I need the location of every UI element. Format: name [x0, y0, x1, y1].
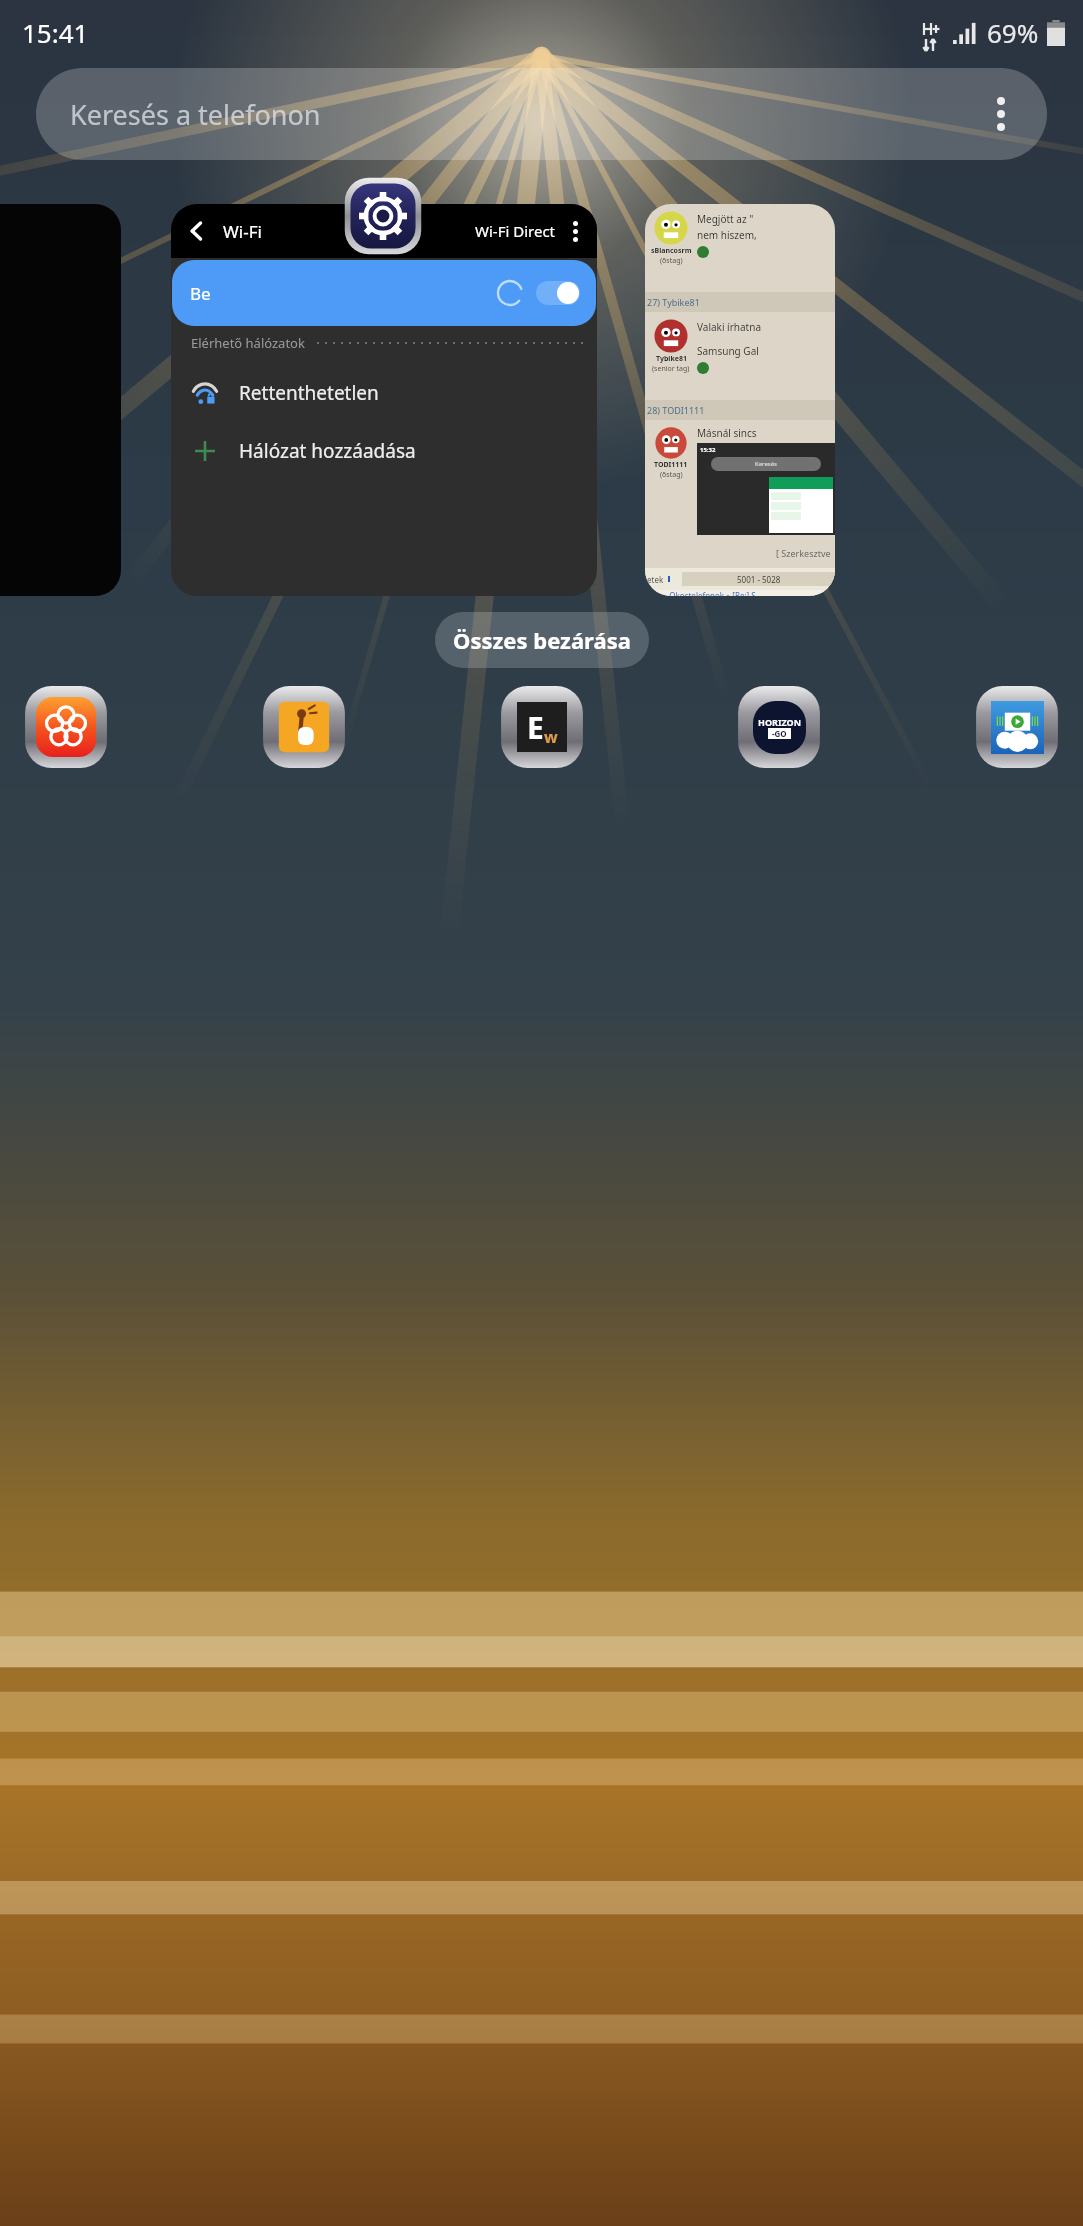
staticText: Másnál sincs — [697, 426, 757, 440]
button[interactable]: sBlancosrm — [645, 204, 835, 596]
staticText: nok » Okostelefonok » [Re:] S — [647, 590, 756, 596]
button[interactable]: Összes bezárása — [435, 612, 649, 668]
staticText: Tybike81 — [656, 354, 687, 364]
button[interactable]: Horizon Go — [735, 683, 823, 771]
staticText: Valaki írhatna — [697, 320, 762, 334]
staticText: (őstag) — [660, 256, 683, 266]
staticText: TODI1111 — [654, 460, 688, 470]
staticText: Samsung Gal — [697, 344, 759, 358]
button[interactable]: Hálózat hozzáadása — [171, 428, 597, 474]
staticText: 28) TODI1111 — [647, 404, 705, 416]
staticText: sBlancosrm — [651, 246, 692, 256]
staticText: Wi-Fi Direct — [475, 221, 555, 241]
button[interactable]: Be — [172, 260, 596, 326]
staticText: -GO — [772, 728, 787, 739]
staticText: Hálózat hozzáadása — [239, 438, 416, 464]
staticText: etek — [647, 574, 664, 585]
button[interactable]: Back — [171, 204, 597, 596]
button[interactable]: Media player — [973, 683, 1061, 771]
staticText: nem hiszem, — [697, 228, 757, 242]
button[interactable] — [536, 281, 580, 305]
staticText: Összes bezárása — [453, 625, 631, 655]
button[interactable]: Wi-Fi Direct — [471, 221, 559, 241]
button[interactable]: Touch tool — [260, 683, 348, 771]
staticText: (senior tag) — [652, 364, 690, 374]
staticText: Be — [190, 282, 211, 305]
staticText: w — [544, 726, 558, 748]
button[interactable]: Settings — [343, 176, 423, 256]
staticText: Elérhető hálózatok — [191, 334, 305, 352]
button[interactable]: Rettenthetetlen — [171, 370, 597, 416]
staticText: Megjött az " — [697, 212, 754, 226]
staticText: Rettenthetetlen — [239, 380, 379, 406]
staticText: 27) Tybike81 — [647, 296, 700, 308]
button[interactable] — [0, 204, 121, 596]
staticText: 69% — [987, 15, 1039, 50]
staticText: (őstag) — [660, 470, 683, 480]
staticText: E — [527, 707, 544, 748]
staticText: Keresés — [755, 460, 777, 468]
button[interactable]: Back — [177, 211, 217, 251]
button[interactable]: Gallery — [22, 683, 110, 771]
staticText: [ Szerkesztve — [776, 547, 831, 559]
button[interactable]: More options — [559, 215, 591, 247]
staticText: Keresés a telefonon — [70, 96, 321, 133]
staticText: 15:41 — [22, 15, 89, 50]
staticText: HORIZON — [758, 716, 801, 728]
button[interactable]: Keresés a telefonon — [36, 68, 1047, 160]
staticText: 5001 - 5028 — [737, 574, 781, 585]
staticText: Wi-Fi — [223, 220, 262, 243]
staticText: 15:32 — [700, 446, 716, 454]
button[interactable]: Ew app — [498, 683, 586, 771]
button[interactable]: More options — [973, 86, 1029, 142]
